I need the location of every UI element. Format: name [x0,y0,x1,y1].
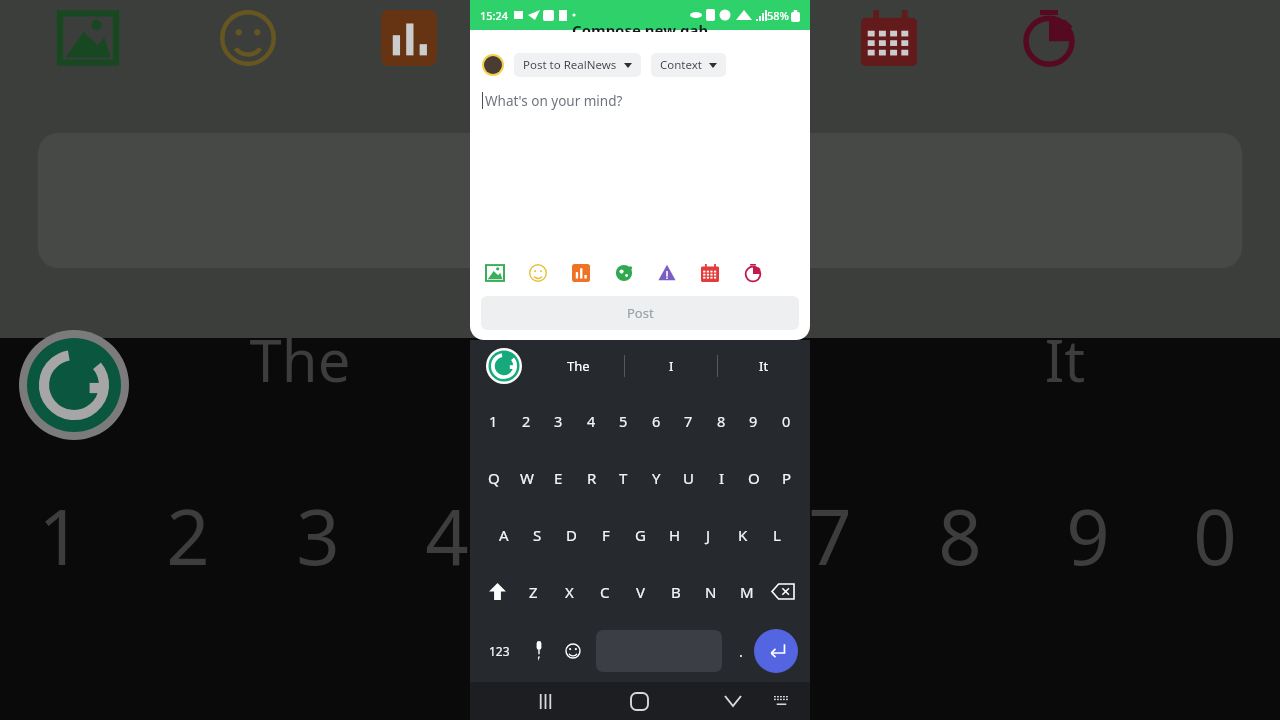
button[interactable]: D [556,506,587,563]
button[interactable]: S [522,506,553,563]
button[interactable]: 9 [738,392,769,449]
staticText: I [719,468,725,488]
staticText: 123 [489,643,510,659]
staticText: V [636,582,646,602]
button[interactable]: H [659,506,690,563]
button[interactable]: G [625,506,656,563]
staticText: G [635,525,646,545]
staticText: T [619,468,628,488]
staticText: Post [627,304,654,322]
staticText: S [533,525,542,545]
button[interactable]: It [718,340,810,392]
button[interactable]: Context [651,53,726,77]
staticText: 2 [128,484,248,588]
staticText: F [602,525,610,545]
staticText: H [669,525,681,545]
button[interactable]: R [576,449,607,506]
button[interactable]: Q [478,449,509,506]
button[interactable]: Home [622,684,656,718]
staticText: B [671,582,681,602]
button[interactable]: I [625,340,717,392]
button[interactable]: Post [481,296,799,330]
button[interactable]: L [761,506,792,563]
button[interactable]: Globe [613,262,635,284]
button[interactable]: M [731,563,762,620]
staticText: Post to RealNews [523,57,617,73]
button[interactable]: V [625,563,656,620]
button[interactable]: P [771,449,802,506]
button[interactable]: Post to RealNews [514,53,641,77]
staticText: 1 [489,411,498,431]
button[interactable]: 2 [511,392,542,449]
button[interactable]: Mark sensitive [656,262,678,284]
button[interactable]: 0 [771,392,802,449]
staticText: 1 [0,484,120,588]
button[interactable]: A [488,506,519,563]
button[interactable]: W [511,449,542,506]
button[interactable]: 123 [482,620,516,682]
staticText: 6 [652,411,661,431]
staticText: O [748,468,760,488]
button[interactable]: Z [518,563,549,620]
button[interactable]: 6 [641,392,672,449]
staticText: 0 [782,411,791,431]
staticText: R [587,468,597,488]
button[interactable]: Add image [484,262,506,284]
button[interactable]: . [732,620,750,682]
staticText: Y [652,468,661,488]
button[interactable]: 8 [706,392,737,449]
button[interactable]: Create poll [570,262,592,284]
button[interactable]: X [554,563,585,620]
button[interactable]: N [695,563,726,620]
button[interactable]: 7 [673,392,704,449]
button[interactable]: Grammarly [478,340,530,392]
staticText: 0 [1155,484,1275,588]
button[interactable]: B [660,563,691,620]
button[interactable]: I [706,449,737,506]
button[interactable]: U [673,449,704,506]
staticText: It [1005,320,1125,399]
button[interactable]: The [532,340,624,392]
button[interactable]: 1 [478,392,509,449]
staticText: The [567,357,590,375]
staticText: I [669,357,674,375]
button[interactable]: Shift [480,563,514,620]
staticText: C [600,582,610,602]
button[interactable]: Recents [528,684,562,718]
button[interactable]: Add emoji [527,262,549,284]
button[interactable]: J [693,506,724,563]
staticText: The [240,320,360,399]
staticText: E [554,468,563,488]
staticText: Q [488,468,500,488]
staticText: 9 [749,411,758,431]
button[interactable]: Change keyboard [766,686,796,716]
button[interactable]: Emoji [560,620,586,682]
button[interactable]: Enter [754,629,798,673]
button[interactable]: C [589,563,620,620]
button[interactable]: 3 [543,392,574,449]
button[interactable]: Expiry [742,262,764,284]
button[interactable]: Schedule [699,262,721,284]
button[interactable]: 5 [608,392,639,449]
staticText: 3 [554,411,563,431]
button[interactable]: Y [641,449,672,506]
button[interactable]: Hide keyboard [716,684,750,718]
staticText: 8 [717,411,726,431]
button[interactable]: T [608,449,639,506]
staticText: U [683,468,694,488]
button[interactable]: Voice input [526,620,552,682]
staticText: 7 [770,484,890,588]
button[interactable]: F [590,506,621,563]
staticText: 7 [684,411,693,431]
button[interactable]: 4 [576,392,607,449]
staticText: W [520,468,534,488]
staticText: 4 [587,411,596,431]
button[interactable]: O [738,449,769,506]
staticText: 9 [1028,484,1148,588]
button[interactable]: K [727,506,758,563]
button[interactable]: E [543,449,574,506]
staticText: Z [529,582,538,602]
button[interactable]: Backspace [766,563,800,620]
staticText: K [738,525,748,545]
